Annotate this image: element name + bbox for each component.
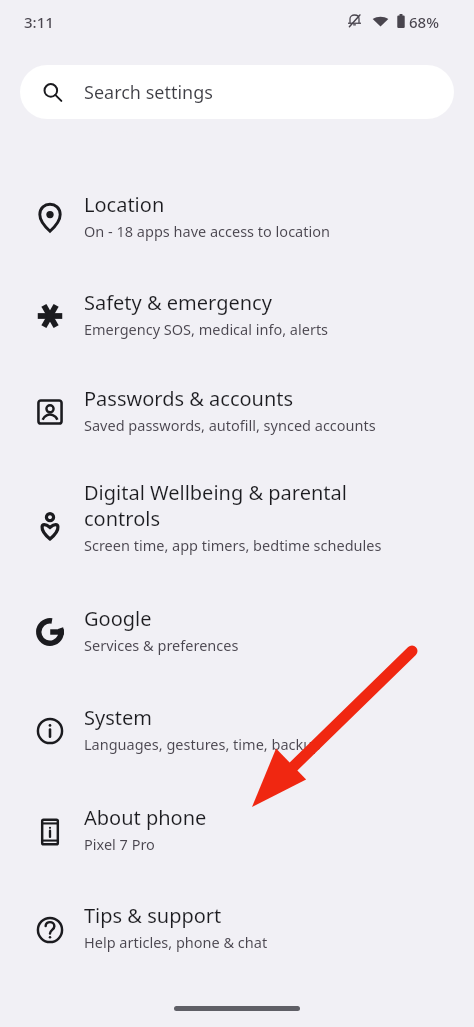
staticText: Saved passwords, autofill, synced accoun… — [84, 415, 376, 435]
button[interactable]: System — [0, 686, 474, 785]
staticText: Digital Wellbeing & parental controls — [84, 479, 347, 532]
staticText: Google — [84, 605, 152, 632]
staticText: Services & preferences — [84, 635, 239, 655]
staticText: 68% — [409, 12, 439, 32]
button[interactable]: Search — [20, 65, 454, 119]
staticText: Search settings — [84, 80, 213, 105]
staticText: Help articles, phone & chat — [84, 932, 268, 952]
button[interactable]: Tips & support — [0, 885, 474, 981]
staticText: On - 18 apps have access to location — [84, 221, 330, 241]
button[interactable]: Passwords & accounts — [0, 368, 474, 464]
button[interactable]: Safety & emergency — [0, 272, 474, 368]
staticText: About phone — [84, 804, 207, 831]
button[interactable]: Location — [0, 176, 474, 272]
staticText: Location — [84, 191, 165, 218]
staticText: Tips & support — [84, 902, 222, 929]
staticText: Passwords & accounts — [84, 385, 294, 412]
button[interactable]: Digital Wellbeing & parental controls — [0, 464, 474, 588]
staticText: Safety & emergency — [84, 289, 272, 316]
button[interactable]: Google — [0, 588, 474, 686]
staticText: Screen time, app timers, bedtime schedul… — [84, 535, 382, 555]
button[interactable]: About phone — [0, 785, 474, 885]
staticText: System — [84, 704, 152, 731]
other: Search — [42, 82, 63, 103]
staticText: 3:11 — [24, 12, 54, 32]
staticText: Emergency SOS, medical info, alerts — [84, 319, 329, 339]
staticText: Languages, gestures, time, backup — [84, 734, 322, 754]
staticText: Pixel 7 Pro — [84, 834, 155, 854]
